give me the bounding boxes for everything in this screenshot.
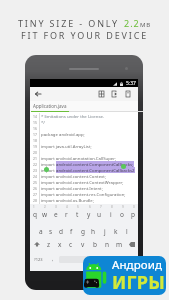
staticText: 20 — [33, 150, 37, 155]
staticText: 7 — [100, 205, 102, 209]
button[interactable]: v — [77, 237, 89, 251]
staticText: h — [91, 227, 96, 236]
button[interactable]: q — [30, 207, 40, 221]
staticText: , — [52, 256, 54, 263]
button[interactable]: Back — [30, 87, 46, 101]
button[interactable]: g — [77, 224, 88, 238]
button[interactable]: Backspace — [125, 237, 138, 251]
staticText: 28 — [33, 198, 37, 203]
staticText: import — [41, 167, 56, 173]
staticText: 16 — [33, 126, 37, 131]
button[interactable]: r — [61, 207, 72, 221]
staticText: d — [59, 227, 63, 236]
staticText: c — [69, 240, 73, 249]
button[interactable]: Android Games — [83, 256, 166, 295]
staticText: FIT FOR YOUR DEVICE — [21, 29, 149, 41]
staticText: 9 — [122, 205, 124, 209]
staticText: android.content.ComponentCallbacks; — [56, 161, 134, 167]
button[interactable]: y — [83, 207, 94, 221]
staticText: 27 — [33, 192, 37, 197]
staticText: j — [104, 227, 106, 236]
staticText: import android.annotation.CallSuper; — [41, 155, 117, 161]
button[interactable]: Comma — [47, 252, 58, 266]
button[interactable]: Space — [59, 256, 111, 263]
button[interactable]: w — [40, 207, 50, 221]
button[interactable]: d — [56, 224, 66, 238]
button[interactable]: m — [113, 237, 125, 251]
button[interactable]: More — [121, 87, 134, 101]
staticText: z — [47, 240, 51, 249]
button[interactable]: l — [121, 224, 132, 238]
staticText: x — [58, 240, 62, 249]
staticText: 23 — [33, 168, 37, 173]
button[interactable]: c — [65, 237, 77, 251]
button[interactable]: b — [89, 237, 101, 251]
staticText: 21 — [33, 156, 37, 161]
button[interactable]: n — [101, 237, 113, 251]
button[interactable]: a — [36, 224, 46, 238]
button[interactable]: z — [43, 237, 54, 251]
button[interactable]: s — [46, 224, 56, 238]
staticText: a — [39, 227, 43, 236]
staticText: u — [97, 210, 102, 219]
staticText: t — [76, 210, 79, 219]
staticText: o — [120, 210, 124, 219]
staticText: k — [114, 227, 118, 236]
staticText: MB — [140, 21, 151, 29]
staticText: i — [110, 210, 112, 219]
button[interactable]: o — [116, 207, 127, 221]
button[interactable]: Run — [108, 87, 121, 101]
button[interactable]: i — [105, 207, 116, 221]
staticText: ИГРЫ — [112, 270, 165, 295]
staticText: 1 — [33, 205, 35, 209]
staticText: import android.content.ContextWrapper; — [41, 179, 124, 185]
staticText: 18 — [33, 138, 37, 143]
staticText: Андроид — [112, 257, 163, 273]
staticText: 5 — [77, 205, 79, 209]
button[interactable]: h — [88, 224, 99, 238]
staticText: 24 — [33, 174, 37, 179]
staticText: n — [105, 240, 110, 249]
staticText: f — [70, 227, 73, 236]
button[interactable]: Shift — [30, 237, 43, 251]
button[interactable]: Enter — [123, 252, 138, 266]
staticText: package android.app; — [41, 131, 85, 137]
button[interactable]: e — [50, 207, 61, 221]
staticText: TINY SIZE - ONLY — [18, 17, 124, 29]
button[interactable]: u — [94, 207, 105, 221]
staticText: 8 — [111, 205, 113, 209]
button[interactable]: p — [127, 207, 138, 221]
staticText: Application.java — [33, 103, 67, 109]
staticText: y — [87, 210, 91, 219]
staticText: import java.util.ArrayList; — [41, 143, 92, 149]
button[interactable]: Grid — [95, 87, 108, 101]
staticText: s — [49, 227, 53, 236]
staticText: b — [93, 240, 97, 249]
button[interactable]: f — [66, 224, 77, 238]
button[interactable]: x — [54, 237, 65, 251]
staticText: ?123 — [34, 257, 43, 262]
staticText: 2.2 — [124, 17, 140, 29]
staticText: 3 — [55, 205, 57, 209]
staticText: v — [81, 240, 85, 249]
staticText: 19 — [33, 144, 37, 149]
staticText: 17 — [33, 132, 37, 137]
staticText: import — [41, 161, 56, 167]
button[interactable]: t — [72, 207, 83, 221]
staticText: */ — [41, 119, 45, 125]
staticText: g — [81, 227, 85, 236]
button[interactable]: j — [99, 224, 110, 238]
staticText: import android.content.res.Configuration… — [41, 191, 126, 197]
staticText: 6 — [89, 205, 91, 209]
staticText: 5:37 — [126, 80, 136, 87]
staticText: l — [126, 227, 128, 236]
staticText: 22 — [33, 162, 37, 167]
staticText: import android.content.Context; — [41, 173, 106, 179]
button[interactable]: k — [110, 224, 121, 238]
button[interactable]: ?123 — [30, 252, 47, 266]
staticText: 0 — [133, 205, 135, 209]
button[interactable]: Period — [112, 252, 123, 266]
staticText: p — [131, 210, 135, 219]
